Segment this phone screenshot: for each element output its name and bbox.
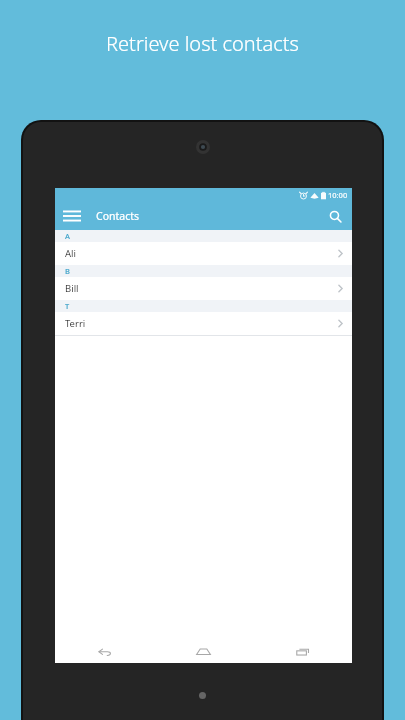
button[interactable]: Bill xyxy=(55,277,352,300)
staticText: T xyxy=(65,301,70,311)
button[interactable]: Terri xyxy=(55,312,352,335)
staticText: B xyxy=(65,266,70,276)
button[interactable]: Open navigation drawer xyxy=(61,205,83,227)
staticText: Retrieve lost contacts xyxy=(0,30,405,57)
button[interactable]: Search xyxy=(324,205,346,227)
staticText: Ali xyxy=(65,247,76,260)
button[interactable]: Ali xyxy=(55,242,352,265)
button[interactable]: Back xyxy=(55,640,154,663)
staticText: A xyxy=(65,231,70,241)
staticText: 10:00 xyxy=(328,190,348,200)
staticText: Contacts xyxy=(96,209,140,223)
staticText: Bill xyxy=(65,282,79,295)
button[interactable]: Home xyxy=(154,640,253,663)
staticText: Terri xyxy=(65,317,86,330)
button[interactable]: Recent apps xyxy=(253,640,352,663)
